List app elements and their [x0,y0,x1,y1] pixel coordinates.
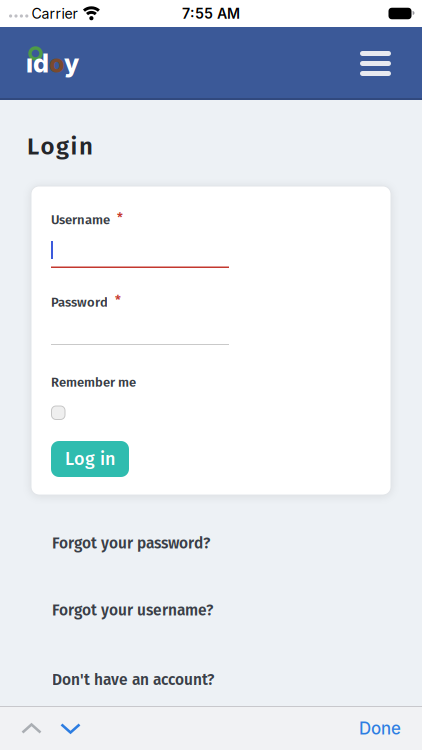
button[interactable]: Menu [360,51,422,76]
staticText: Forgot your username? [52,601,213,620]
button[interactable]: Log in [51,441,129,477]
staticText: Forgot your password? [52,534,210,553]
staticText: Username [51,212,110,228]
staticText: y [64,48,79,79]
staticText: * [117,210,123,226]
staticText: Don't have an account? [52,671,214,689]
staticText: * [115,293,121,308]
staticText: Done [359,718,401,739]
staticText: Password [51,295,108,310]
staticText: o [49,48,64,79]
button[interactable]: Previous field [0,723,42,734]
staticText: Login [27,132,93,161]
button[interactable]: Forgot your username? [52,601,213,620]
staticText: Log in [65,448,115,470]
button[interactable]: Remember me [51,405,65,420]
button[interactable]: Done [359,718,422,739]
staticText: 7:55 AM [182,5,240,22]
button[interactable]: Forgot your password? [52,534,210,553]
button[interactable]: Next field [42,723,81,734]
staticText: Remember me [51,375,136,390]
staticText: ıd [26,48,49,79]
button[interactable]: Don't have an account? [52,671,214,689]
staticText: Carrier [31,5,77,22]
